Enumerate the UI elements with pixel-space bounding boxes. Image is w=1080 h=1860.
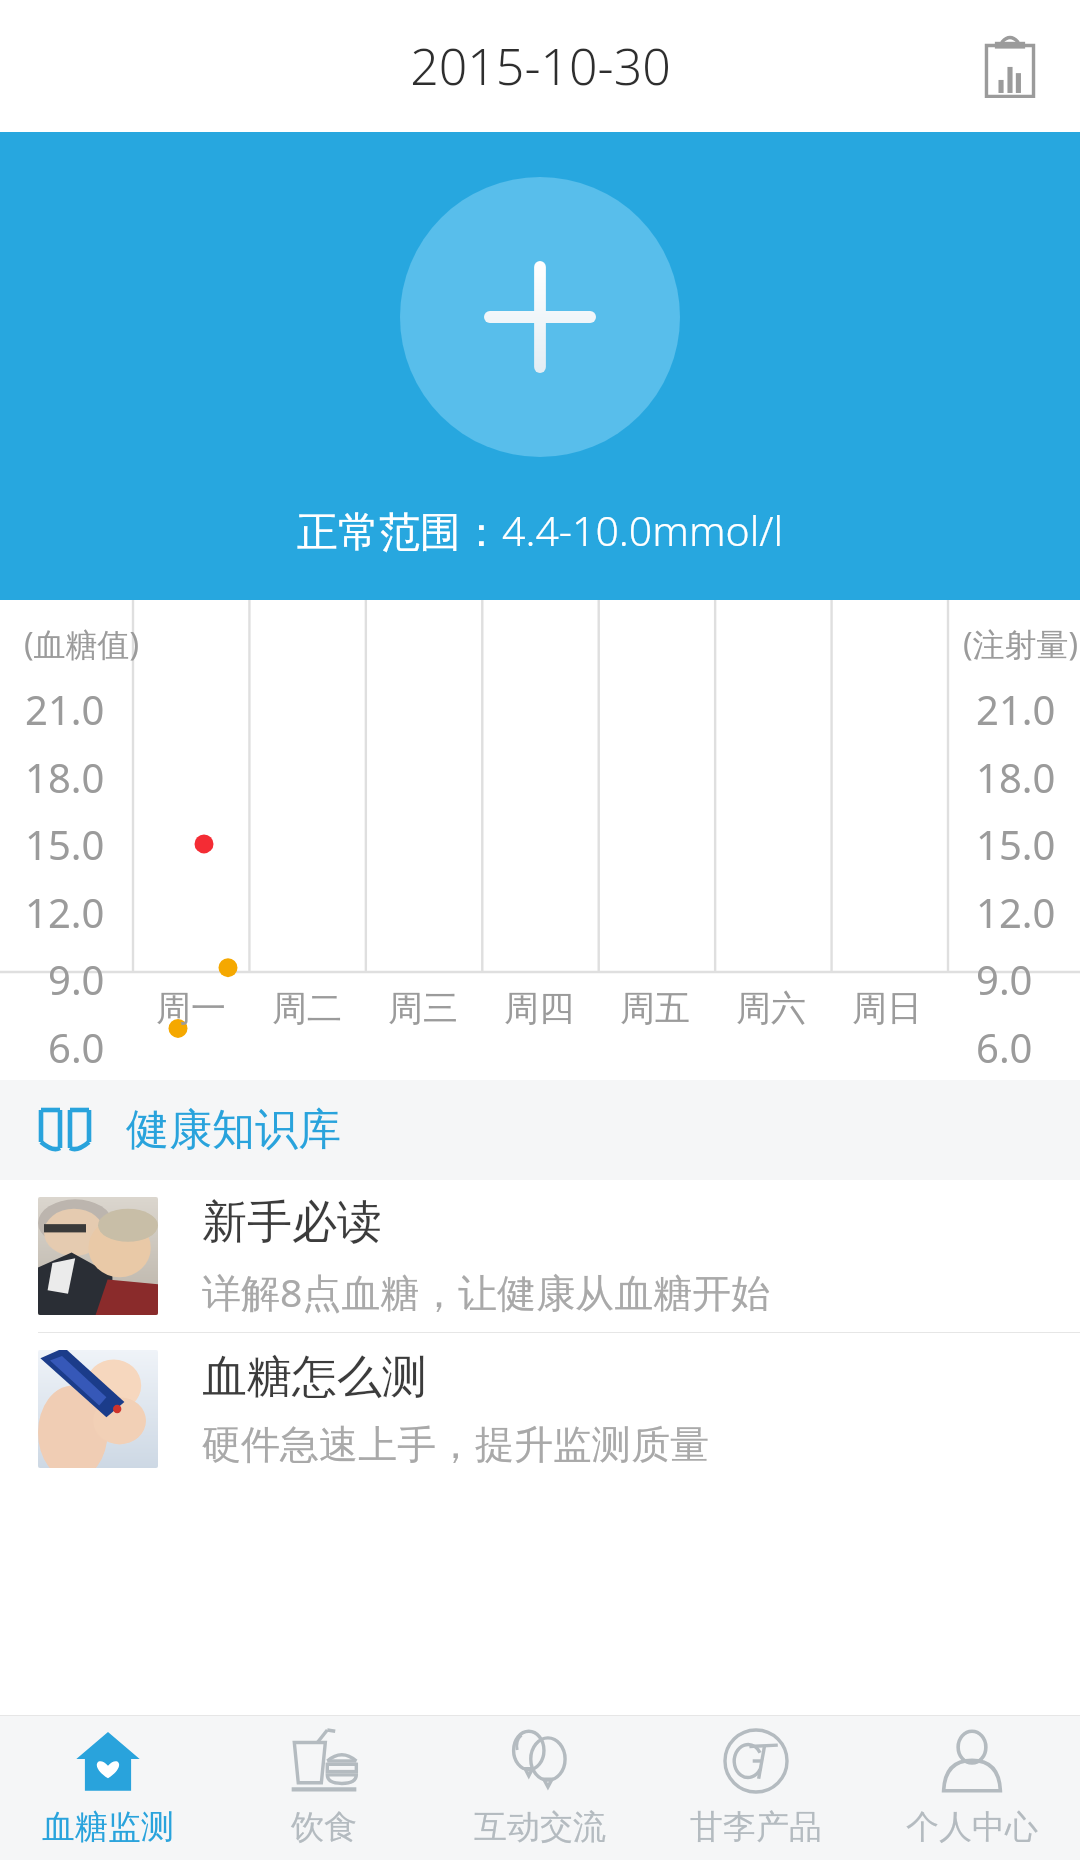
staticText: (血糖值) [24, 622, 140, 666]
staticText: 周日 [852, 986, 922, 1030]
staticText: 6.0 [976, 1020, 1033, 1074]
button[interactable]: 统计报告 [962, 18, 1058, 114]
staticText: 15.0 [976, 817, 1056, 871]
staticText: 周三 [388, 986, 458, 1030]
staticText: 21.0 [25, 682, 105, 736]
staticText: 饮食 [291, 1806, 357, 1848]
button[interactable]: 血糖怎么测 [0, 1333, 1080, 1485]
staticText: 18.0 [976, 750, 1056, 804]
button[interactable]: 饮食 [216, 1715, 432, 1860]
staticText: 硬件急速上手，提升监测质量 [202, 1420, 709, 1469]
button[interactable]: 健康知识库 [0, 1080, 1080, 1180]
staticText: 12.0 [976, 885, 1056, 939]
staticText: 15.0 [25, 817, 105, 871]
button[interactable]: 血糖监测 [0, 1715, 216, 1860]
staticText: 正常范围：4.4-10.0mmol/l [297, 502, 783, 558]
button[interactable]: 个人中心 [864, 1715, 1080, 1860]
staticText: (注射量) [963, 622, 1079, 666]
staticText: 周五 [620, 986, 690, 1030]
staticText: 9.0 [976, 952, 1033, 1006]
staticText: 新手必读 [202, 1194, 382, 1251]
button[interactable]: 互动交流 [432, 1715, 648, 1860]
staticText: 甘李产品 [690, 1806, 822, 1848]
staticText: 健康知识库 [126, 1103, 341, 1157]
staticText: 个人中心 [906, 1806, 1038, 1848]
button[interactable]: 添加血糖记录 [400, 177, 680, 457]
staticText: 互动交流 [474, 1806, 606, 1848]
staticText: 血糖监测 [42, 1806, 174, 1848]
staticText: 6.0 [48, 1020, 105, 1074]
staticText: 周四 [504, 986, 574, 1030]
staticText: 周六 [736, 986, 806, 1030]
staticText: 详解8点血糖，让健康从血糖开始 [202, 1265, 771, 1318]
staticText: 周一 [156, 986, 226, 1030]
staticText: 2015-10-30 [410, 32, 671, 100]
staticText: 9.0 [48, 952, 105, 1006]
staticText: 周二 [272, 986, 342, 1030]
button[interactable]: 新手必读 [0, 1180, 1080, 1332]
staticText: 21.0 [976, 682, 1056, 736]
staticText: 12.0 [25, 885, 105, 939]
button[interactable]: 甘李产品 [648, 1715, 864, 1860]
staticText: 18.0 [25, 750, 105, 804]
staticText: 血糖怎么测 [202, 1349, 427, 1406]
